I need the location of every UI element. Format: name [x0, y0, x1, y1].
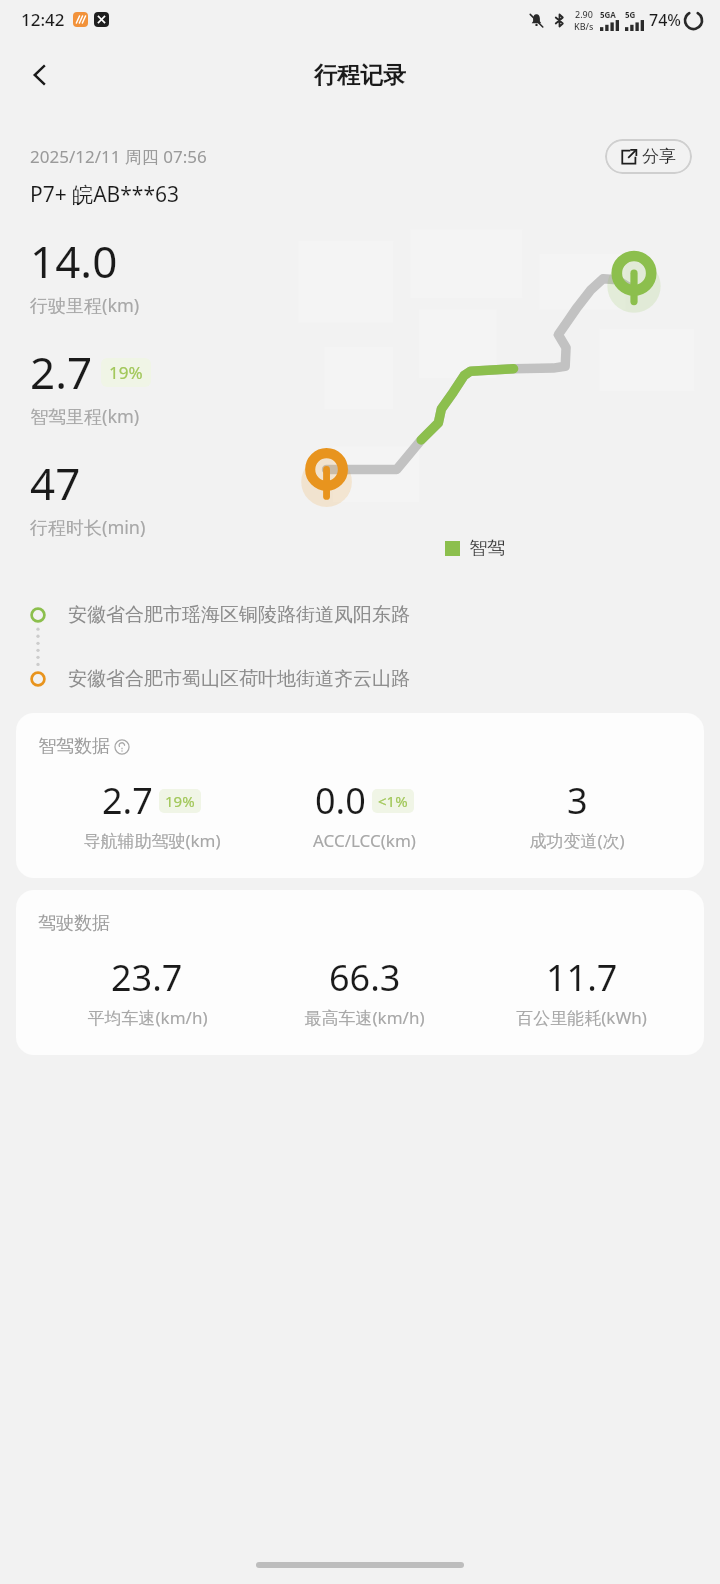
- staticText: 3: [567, 776, 588, 825]
- staticText: 2.90: [575, 8, 593, 20]
- staticText: ACC/LCC(km): [313, 829, 416, 852]
- staticText: 2.7: [102, 776, 153, 825]
- staticText: 19%: [165, 791, 195, 811]
- staticText: 平均车速(km/h): [87, 1006, 208, 1029]
- staticText: 安徽省合肥市蜀山区荷叶地街道齐云山路: [68, 667, 410, 691]
- button[interactable]: 智驾数据: [16, 713, 704, 878]
- staticText: 66.3: [329, 953, 401, 1002]
- staticText: 分享: [642, 146, 676, 167]
- staticText: 14.0: [30, 231, 118, 291]
- staticText: 5GA: [600, 9, 616, 20]
- staticText: 成功变道(次): [529, 829, 625, 852]
- staticText: 导航辅助驾驶(km): [83, 829, 221, 852]
- staticText: KB/s: [574, 20, 594, 32]
- staticText: 智驾: [469, 537, 505, 560]
- staticText: 5G: [625, 9, 636, 20]
- staticText: 19%: [109, 361, 143, 384]
- staticText: 行程记录: [314, 61, 406, 90]
- staticText: 2025/12/11 周四 07:56: [30, 145, 207, 168]
- staticText: 23.7: [111, 953, 183, 1002]
- staticText: 智驾里程(km): [30, 404, 140, 429]
- staticText: <1%: [378, 791, 408, 811]
- staticText: 行程时长(min): [30, 515, 146, 540]
- staticText: 2.7: [30, 342, 93, 402]
- staticText: 0.0: [315, 776, 366, 825]
- staticText: 最高车速(km/h): [304, 1006, 425, 1029]
- staticText: 驾驶数据: [38, 912, 110, 935]
- button[interactable]: Back: [14, 49, 66, 101]
- staticText: 12:42: [21, 8, 65, 31]
- staticText: P7+ 皖AB***63: [30, 180, 179, 209]
- button[interactable]: 驾驶数据: [16, 890, 704, 1055]
- staticText: 47: [30, 453, 81, 513]
- staticText: 74%: [649, 9, 681, 31]
- staticText: 安徽省合肥市瑶海区铜陵路街道凤阳东路: [68, 603, 410, 627]
- button[interactable]: 分享: [605, 139, 692, 174]
- staticText: 11.7: [546, 953, 618, 1002]
- staticText: 百公里能耗(kWh): [516, 1006, 647, 1029]
- staticText: 行驶里程(km): [30, 293, 140, 318]
- staticText: 智驾数据: [38, 735, 110, 758]
